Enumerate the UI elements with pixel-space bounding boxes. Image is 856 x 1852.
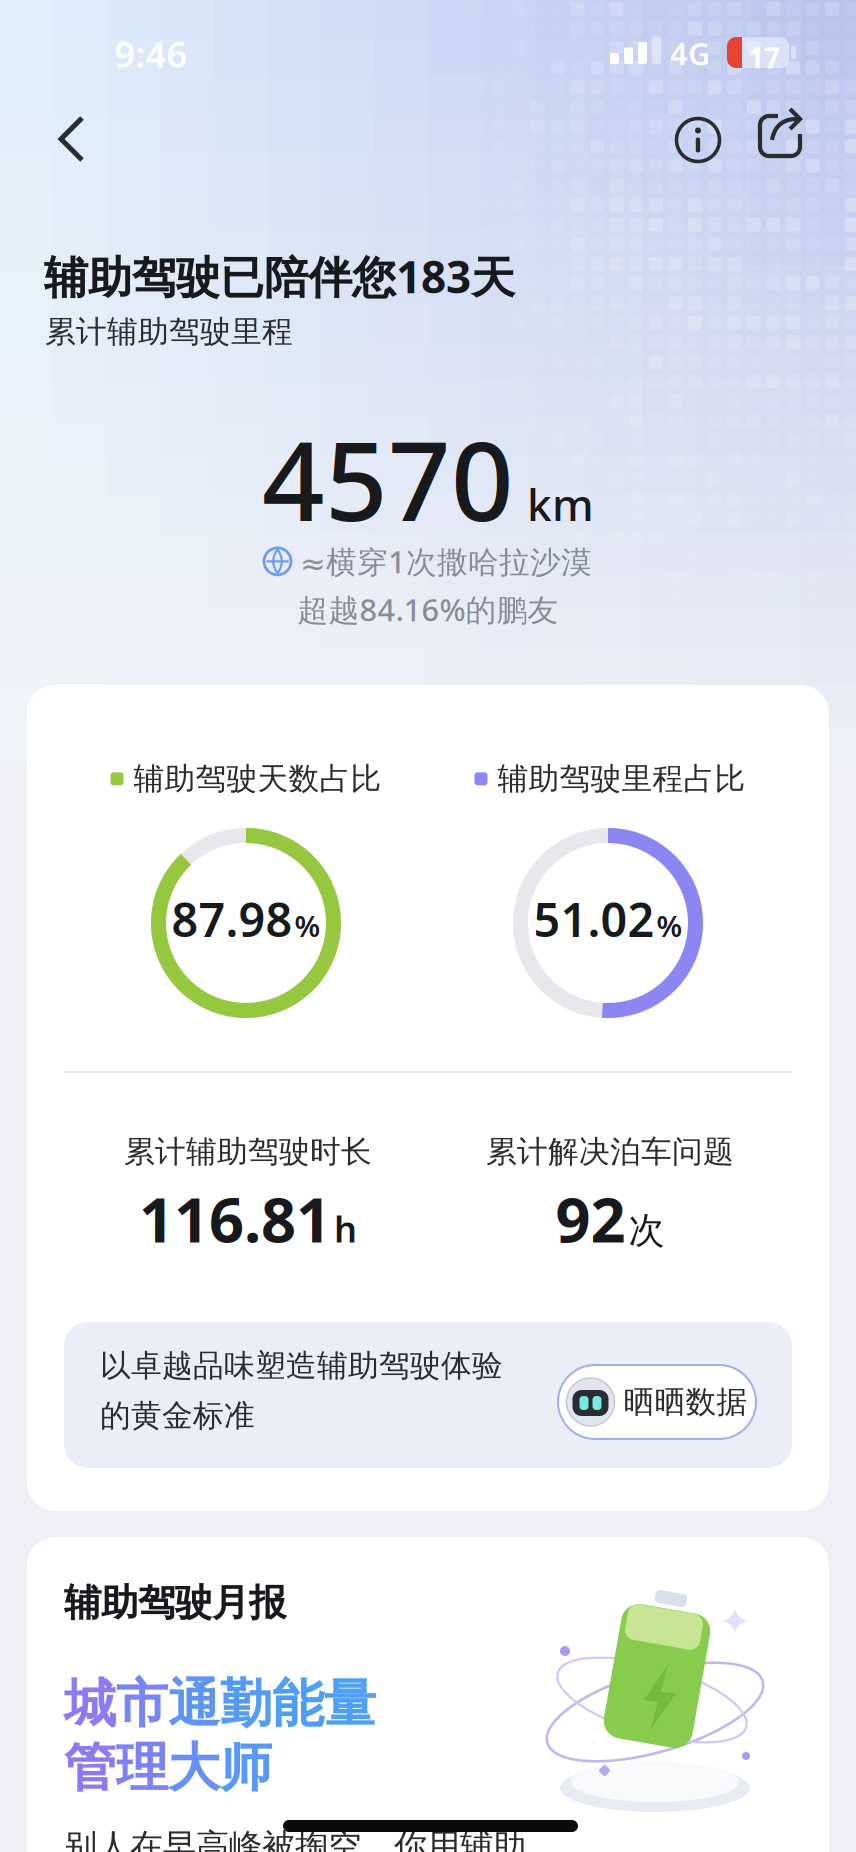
button[interactable]: Info (664, 106, 720, 162)
button[interactable]: Share (752, 106, 808, 162)
staticText: 超越84.16%的鹏友 (297, 589, 558, 630)
staticText: 市 (116, 1672, 168, 1736)
staticText: 别人在早高峰被掏空，你用辅助 (64, 1826, 526, 1852)
staticText: 量 (324, 1672, 376, 1736)
staticText: 累计辅助驾驶里程 (45, 313, 293, 351)
staticText: 9:46 (114, 30, 187, 78)
staticText: 4G (670, 33, 710, 74)
staticText: % (294, 906, 320, 945)
staticText: 能 (272, 1672, 324, 1736)
staticText: 92 (555, 1178, 625, 1259)
staticText: 87.98 (171, 888, 292, 950)
staticText: 辅助驾驶已陪伴您183天 (44, 247, 515, 305)
staticText: h (334, 1205, 357, 1252)
button[interactable]: 晒晒数据 (558, 1365, 756, 1439)
staticText: 17 (748, 39, 780, 76)
staticText: 晒晒数据 (623, 1383, 747, 1421)
staticText: 管 (64, 1736, 116, 1800)
staticText: 勤 (220, 1672, 272, 1736)
staticText: 辅助驾驶里程占比 (497, 760, 745, 798)
staticText: 的黄金标准 (100, 1397, 255, 1435)
staticText: 次 (628, 1208, 664, 1253)
staticText: 师 (220, 1736, 272, 1800)
staticText: 累计辅助驾驶时长 (124, 1133, 372, 1171)
staticText: 理 (116, 1736, 168, 1800)
staticText: 大 (168, 1736, 220, 1800)
button[interactable]: Back (48, 108, 104, 168)
staticText: km (527, 475, 594, 533)
staticText: 城 (64, 1672, 116, 1736)
staticText: 通 (168, 1672, 220, 1736)
staticText: % (656, 906, 682, 945)
staticText: 辅助驾驶天数占比 (133, 760, 381, 798)
staticText: 以卓越品味塑造辅助驾驶体验 (100, 1347, 503, 1385)
staticText: ≈横穿1次撒哈拉沙漠 (300, 541, 592, 582)
staticText: 累计解决泊车问题 (486, 1133, 734, 1171)
staticText: 4570 (262, 406, 514, 551)
staticText: 116.81 (139, 1178, 331, 1259)
staticText: 辅助驾驶月报 (64, 1580, 286, 1626)
staticText: 51.02 (533, 888, 654, 950)
